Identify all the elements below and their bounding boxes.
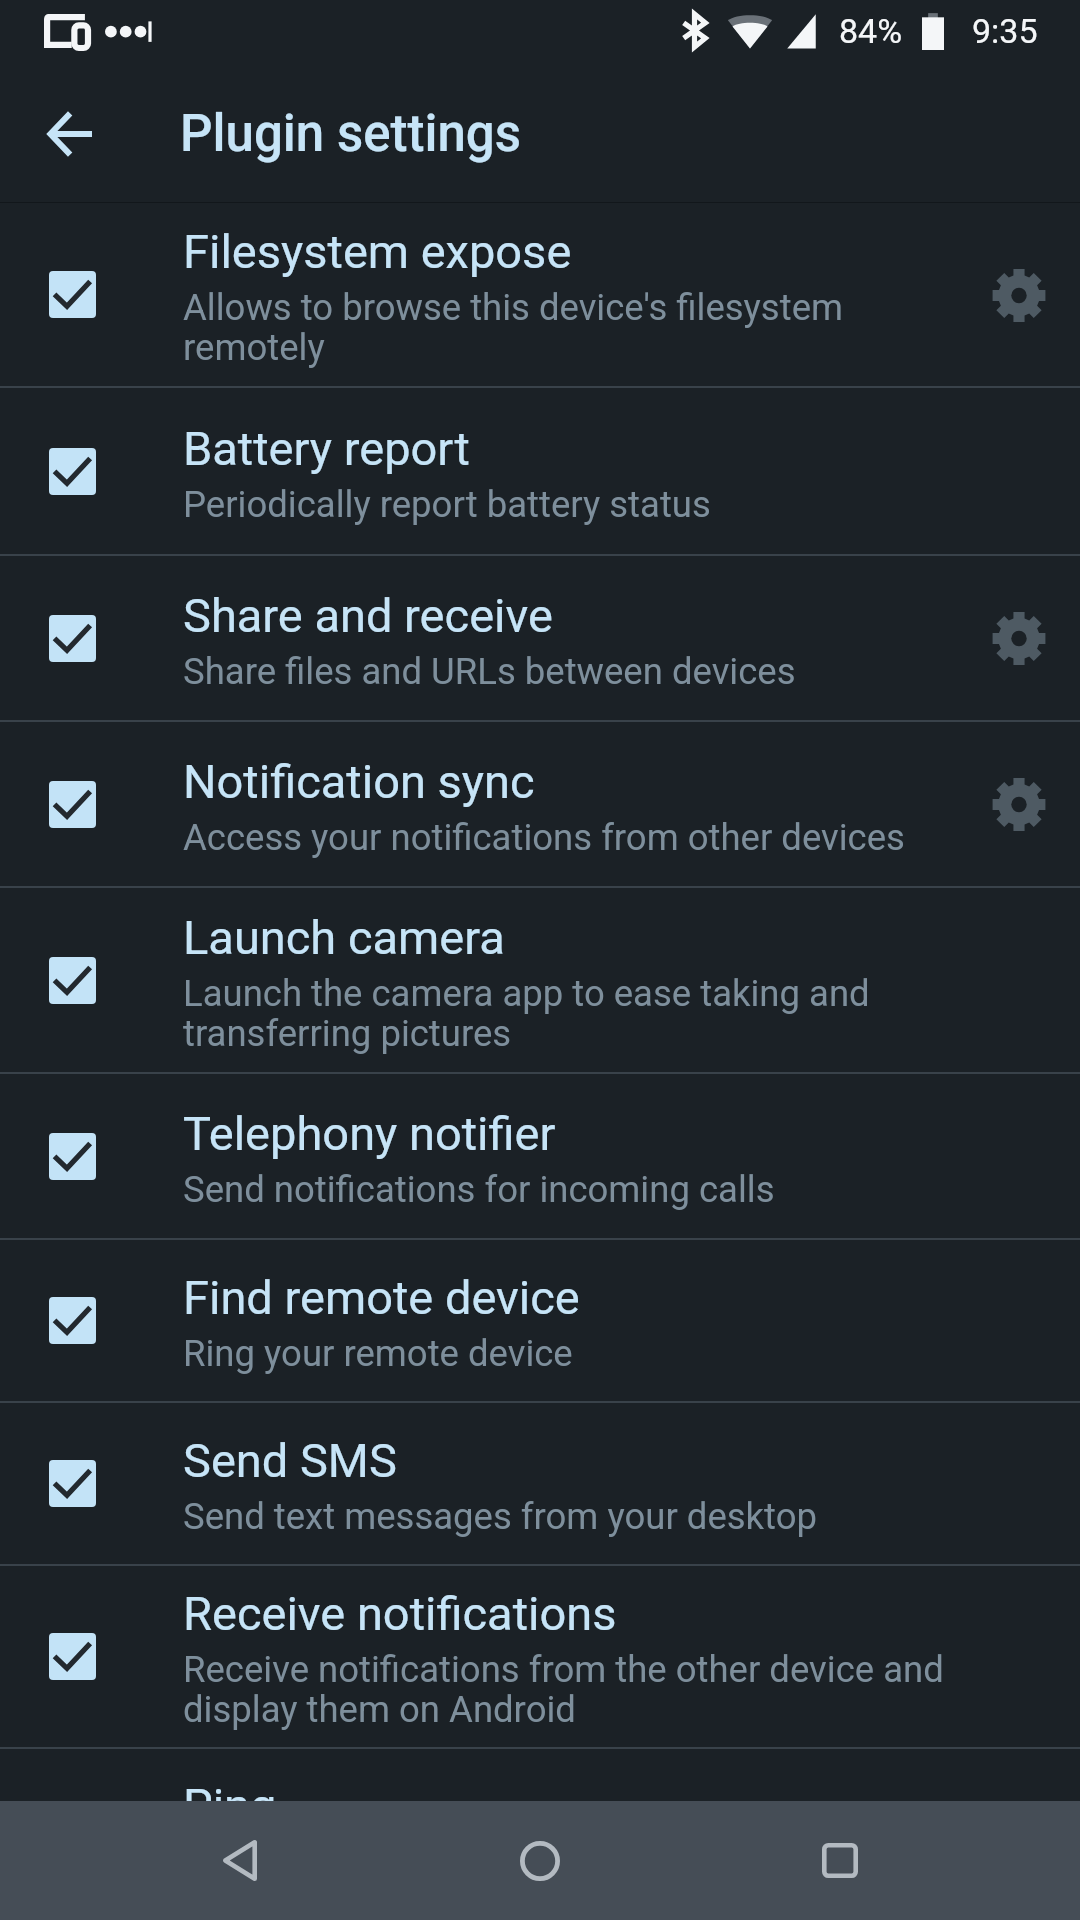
button[interactable]: Enable plugin [0,203,145,386]
staticText: 9:35 [972,11,1038,51]
staticText: Launch camera [183,908,505,966]
staticText: Share files and URLs between devices [183,652,796,692]
staticText: Find remote device [183,1268,580,1326]
button[interactable]: Enable plugin [0,1566,1080,1747]
button[interactable]: Enable plugin [0,388,1080,554]
button[interactable]: Enable plugin [0,1403,1080,1564]
staticText: Ping [183,1776,277,1834]
button[interactable]: Enable plugin [0,1749,1080,1907]
staticText: Plugin settings [180,104,521,164]
staticText: Telephony notifier [183,1104,556,1162]
button[interactable]: Enable plugin [0,1566,145,1747]
button[interactable]: Recent apps [720,1801,960,1920]
staticText: Notification sync [183,752,535,810]
staticText: Filesystem expose [183,222,572,280]
button[interactable]: Enable plugin [0,1403,145,1564]
staticText: Periodically report battery status [183,485,711,525]
staticText: Allows to browse this device's filesyste… [183,288,944,368]
button[interactable]: Back [120,1801,360,1920]
staticText: Receive notifications [183,1584,617,1642]
button[interactable]: Enable plugin [0,388,145,554]
button[interactable]: Enable plugin [0,556,145,720]
staticText: Send text messages from your desktop [183,1497,817,1537]
button[interactable]: Plugin options [971,247,1067,343]
button[interactable]: Enable plugin [0,888,145,1072]
staticText: Access your notifications from other dev… [183,818,905,858]
staticText: Ring your remote device [183,1334,573,1374]
staticText: 84% [839,11,903,51]
button[interactable]: Back [23,86,119,182]
button[interactable]: Plugin options [971,756,1067,852]
button[interactable]: Enable plugin [0,1749,145,1907]
staticText: Send and receive pings [183,1842,557,1882]
button[interactable]: Enable plugin [0,203,1080,386]
staticText: Send notifications for incoming calls [183,1170,775,1210]
staticText: Battery report [183,419,470,477]
button[interactable]: Enable plugin [0,1240,1080,1401]
staticText: Share and receive [183,586,553,644]
button[interactable]: Enable plugin [0,722,145,886]
staticText: Receive notifications from the other dev… [183,1650,944,1730]
button[interactable]: Enable plugin [0,1240,145,1401]
staticText: Launch the camera app to ease taking and… [183,974,944,1054]
button[interactable]: Enable plugin [0,1074,145,1238]
button[interactable]: Enable plugin [0,722,1080,886]
staticText: Send SMS [183,1431,397,1489]
button[interactable]: Enable plugin [0,556,1080,720]
button[interactable]: Plugin options [971,590,1067,686]
button[interactable]: Enable plugin [0,1074,1080,1238]
button[interactable]: Enable plugin [0,888,1080,1072]
button[interactable]: Home [360,1801,720,1920]
